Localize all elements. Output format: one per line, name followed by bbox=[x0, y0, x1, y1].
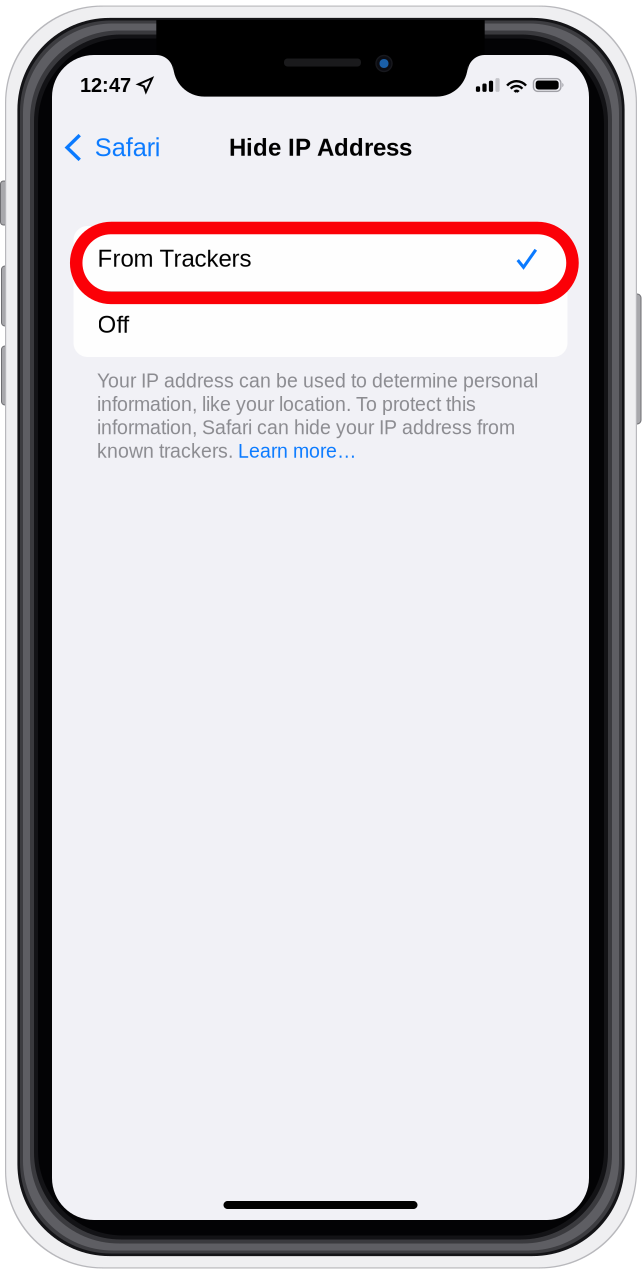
staticText: Your IP address can be used to determine… bbox=[97, 370, 538, 392]
staticText: Hide IP Address bbox=[229, 134, 412, 161]
staticText: known trackers. bbox=[97, 440, 238, 462]
staticText: information, like your location. To prot… bbox=[97, 393, 476, 415]
staticText: 12:47 bbox=[80, 74, 131, 96]
staticText: Learn more… bbox=[238, 440, 356, 462]
staticText: Safari bbox=[95, 133, 161, 162]
staticText: information, Safari can hide your IP add… bbox=[97, 417, 515, 438]
button[interactable]: From Trackers bbox=[73, 226, 567, 291]
button[interactable]: Safari bbox=[52, 123, 173, 172]
staticText: Off bbox=[97, 311, 129, 338]
button[interactable]: Off bbox=[73, 292, 567, 357]
staticText: From Trackers bbox=[97, 245, 251, 272]
button[interactable]: Learn more… bbox=[238, 440, 356, 462]
